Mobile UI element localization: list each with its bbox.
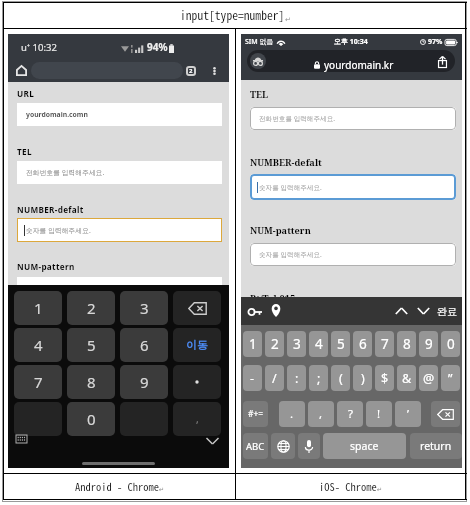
button[interactable]: Passwords bbox=[246, 303, 263, 320]
button[interactable]: 숫자를 입력해주세요. bbox=[250, 174, 456, 200]
button[interactable]: 9 bbox=[120, 365, 168, 399]
button[interactable]: 숫자를 입력해주세요. bbox=[17, 218, 222, 242]
button[interactable]: ; bbox=[309, 365, 328, 391]
staticText: 5 bbox=[337, 335, 345, 353]
staticText: ” bbox=[448, 370, 453, 387]
button[interactable]: ! bbox=[366, 401, 392, 427]
button[interactable]: : bbox=[287, 365, 306, 391]
button[interactable]: #+= bbox=[243, 401, 268, 427]
button[interactable]: 숫자를 입력해주세요. bbox=[250, 243, 456, 266]
staticText: 5 bbox=[87, 335, 96, 355]
button[interactable]: 1 bbox=[243, 331, 262, 357]
staticText: ↵ bbox=[159, 486, 165, 494]
button[interactable]: 4 bbox=[309, 331, 328, 357]
staticText: ↵ bbox=[285, 16, 291, 24]
button[interactable]: ? bbox=[337, 401, 363, 427]
button[interactable]: 2 bbox=[265, 331, 284, 357]
button[interactable]: space bbox=[323, 433, 406, 459]
button[interactable]: Private browsing bbox=[250, 53, 266, 69]
button[interactable]: 이동 bbox=[173, 328, 221, 362]
staticText: 0 bbox=[87, 409, 96, 429]
button[interactable]: Hide keyboard bbox=[204, 433, 220, 449]
button[interactable]: Tabs bbox=[180, 60, 201, 81]
staticText: yourdomain.kr bbox=[324, 58, 394, 72]
button[interactable]: ” bbox=[441, 365, 460, 391]
button[interactable]: , bbox=[173, 402, 221, 436]
button[interactable]: 3 bbox=[120, 291, 168, 325]
button[interactable]: 1 bbox=[14, 291, 62, 325]
staticText: 0 bbox=[447, 335, 455, 353]
button[interactable]: Previous field bbox=[392, 302, 410, 320]
staticText: yourdomain.comn bbox=[26, 110, 88, 119]
button[interactable] bbox=[14, 402, 62, 436]
staticText: , bbox=[196, 412, 199, 426]
staticText: @ bbox=[423, 370, 435, 387]
button[interactable]: 7 bbox=[14, 365, 62, 399]
staticText: 1 bbox=[249, 335, 257, 353]
staticText: NUM-pattern bbox=[17, 261, 75, 272]
button[interactable]: 6 bbox=[353, 331, 372, 357]
button[interactable]: 전화번호를 입력해주세요. bbox=[17, 161, 222, 184]
button[interactable]: 0 bbox=[441, 331, 460, 357]
staticText: NUMBER-defalt bbox=[17, 204, 84, 215]
button[interactable]: ABC bbox=[243, 433, 268, 459]
staticText: space bbox=[350, 439, 379, 453]
button[interactable]: 4 bbox=[14, 328, 62, 362]
staticText: : bbox=[295, 370, 299, 387]
staticText: 오후 10:34 bbox=[334, 37, 368, 47]
staticText: 숫자를 입력해주세요. bbox=[26, 226, 91, 235]
button[interactable]: 8 bbox=[67, 365, 115, 399]
button[interactable]: 7 bbox=[375, 331, 394, 357]
staticText: 6 bbox=[359, 335, 367, 353]
button[interactable]: 6 bbox=[120, 328, 168, 362]
button[interactable] bbox=[17, 277, 222, 300]
staticText: 7 bbox=[34, 372, 43, 392]
button[interactable]: 3 bbox=[287, 331, 306, 357]
button[interactable]: 0 bbox=[67, 402, 115, 436]
staticText: - bbox=[250, 370, 255, 387]
button[interactable]: Change keyboard bbox=[271, 433, 295, 459]
button[interactable]: Backspace bbox=[431, 401, 460, 427]
button[interactable]: - bbox=[243, 365, 262, 391]
staticText: . bbox=[290, 406, 294, 422]
button[interactable]: yourdomain.comn bbox=[17, 103, 222, 126]
button[interactable]: return bbox=[410, 433, 462, 459]
staticText: SIM 없음 bbox=[245, 37, 274, 47]
staticText: TEL bbox=[17, 146, 32, 157]
button[interactable]: Home bbox=[11, 60, 32, 81]
button[interactable]: 8 bbox=[397, 331, 416, 357]
button[interactable]: @ bbox=[419, 365, 438, 391]
button[interactable]: 전화번호를 입력해주세요. bbox=[250, 107, 456, 130]
button[interactable]: ) bbox=[353, 365, 372, 391]
button[interactable]: & bbox=[397, 365, 416, 391]
button[interactable]: Next field bbox=[414, 302, 432, 320]
button[interactable]: <x bbox=[173, 291, 221, 325]
button[interactable]: , bbox=[308, 401, 334, 427]
button[interactable]: . bbox=[173, 365, 221, 399]
button[interactable]: 5 bbox=[67, 328, 115, 362]
button[interactable]: $ bbox=[375, 365, 394, 391]
button[interactable]: . bbox=[279, 401, 305, 427]
button[interactable]: 완료 bbox=[437, 305, 457, 318]
staticText: $ bbox=[381, 370, 389, 387]
button[interactable]: 5 bbox=[331, 331, 350, 357]
staticText: 2 bbox=[189, 67, 193, 75]
button[interactable]: ’ bbox=[395, 401, 421, 427]
button[interactable]: 2 bbox=[67, 291, 115, 325]
button[interactable]: ( bbox=[331, 365, 350, 391]
staticText: input[type=number] bbox=[180, 7, 285, 24]
button[interactable]: 9 bbox=[419, 331, 438, 357]
staticText: / bbox=[272, 370, 277, 387]
staticText: & bbox=[402, 370, 412, 387]
button[interactable]: / bbox=[265, 365, 284, 391]
staticText: 97% bbox=[428, 37, 443, 47]
staticText: 숫자를 입력해주세요. bbox=[259, 250, 322, 259]
button[interactable]: Dictate bbox=[298, 433, 320, 459]
button[interactable]: Location bbox=[267, 302, 284, 319]
staticText: u⁺ 10:32 bbox=[21, 41, 57, 54]
button[interactable]: More options bbox=[204, 60, 225, 81]
staticText: URL bbox=[17, 88, 35, 99]
button[interactable]: Share bbox=[434, 53, 451, 70]
